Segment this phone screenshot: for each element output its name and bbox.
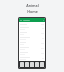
button[interactable]: Key 5 — [40, 62, 44, 67]
button[interactable]: Key 4 — [35, 62, 39, 67]
button[interactable] — [19, 18, 45, 22]
button[interactable] — [20, 37, 44, 40]
button[interactable] — [20, 52, 44, 55]
button[interactable] — [20, 57, 44, 60]
button[interactable]: Key 3 — [30, 62, 34, 67]
button[interactable]: Key 1 — [20, 62, 24, 67]
button[interactable] — [20, 27, 44, 30]
staticText: Animal — [26, 3, 39, 8]
button[interactable] — [20, 47, 44, 50]
button[interactable] — [20, 42, 44, 45]
button[interactable]: Key 2 — [25, 62, 29, 67]
button[interactable] — [20, 32, 44, 35]
staticText: Home — [27, 9, 38, 14]
button[interactable] — [20, 23, 44, 25]
